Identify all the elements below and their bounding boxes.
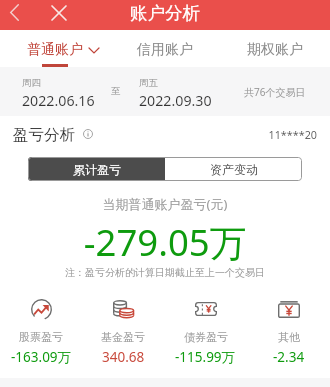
button[interactable]: Back (2, 0, 26, 25)
button[interactable]: 基金盈亏 (82, 298, 164, 366)
staticText: 盈亏分析 (13, 125, 75, 145)
staticText: -2.34 (273, 348, 305, 366)
button[interactable]: 普通账户 (0, 30, 110, 67)
staticText: 累计盈亏 (73, 162, 121, 177)
button[interactable]: Close (45, 0, 73, 25)
staticText: 至 (111, 85, 121, 97)
staticText: 账户分析 (0, 2, 330, 24)
staticText: -279.05万 (0, 217, 330, 267)
staticText: 信用账户 (137, 41, 193, 59)
staticText: 基金盈亏 (101, 330, 145, 344)
staticText: 当期普通账户盈亏(元) (0, 195, 330, 213)
staticText: 2022.06.16 (22, 91, 95, 110)
staticText: 共76个交易日 (244, 85, 306, 99)
staticText: 11****20 (0, 127, 317, 142)
staticText: 周五 (139, 77, 158, 89)
staticText: 周四 (22, 77, 41, 89)
staticText: 资产变动 (210, 162, 258, 177)
staticText: 其他 (278, 330, 300, 344)
staticText: 普通账户 (27, 41, 83, 59)
button[interactable]: 债券盈亏 (164, 298, 247, 366)
staticText: 注：盈亏分析的计算日期截止至上一个交易日 (0, 266, 330, 279)
staticText: 340.68 (102, 348, 145, 366)
button[interactable]: 股票盈亏 (0, 298, 82, 366)
staticText: 2022.09.30 (139, 91, 212, 110)
button[interactable]: 周四 (22, 77, 95, 110)
button[interactable]: 其他 (247, 298, 330, 366)
staticText: 债券盈亏 (184, 330, 228, 344)
staticText: -115.99万 (175, 348, 236, 366)
button[interactable]: 信用账户 (110, 30, 220, 67)
staticText: -163.09万 (11, 348, 72, 366)
button[interactable]: 累计盈亏 (28, 157, 165, 181)
button[interactable]: 期权账户 (220, 30, 330, 67)
button[interactable]: 周五 (139, 77, 212, 110)
button[interactable]: Info (83, 129, 93, 139)
staticText: 股票盈亏 (19, 330, 63, 344)
button[interactable]: 资产变动 (165, 157, 302, 181)
staticText: 期权账户 (247, 41, 303, 59)
